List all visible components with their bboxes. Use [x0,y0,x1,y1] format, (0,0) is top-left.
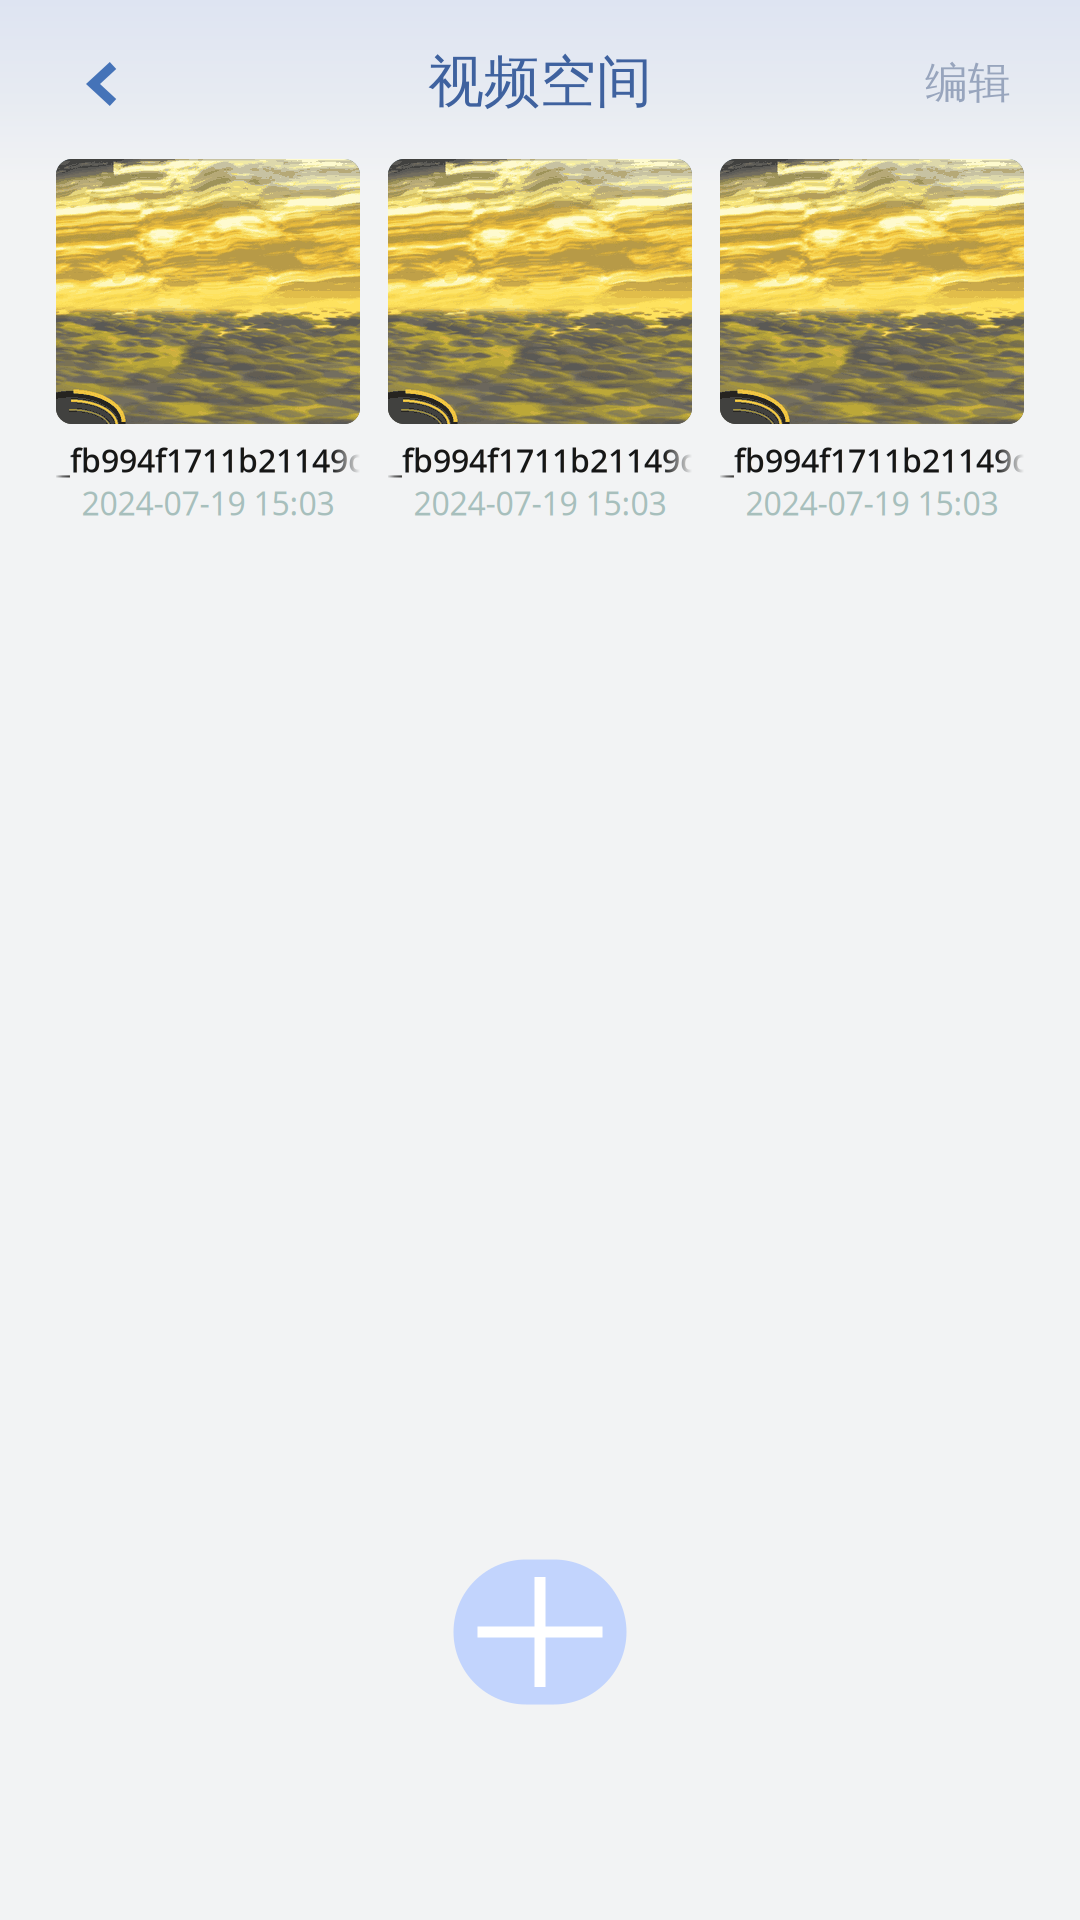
staticText: _fb994f1711b21149c [56,439,364,481]
staticText: 2024-07-19 15:03 [413,482,666,524]
staticText: _fb994f1711b21149c [388,439,696,481]
button[interactable]: Add video [410,1517,670,1747]
button[interactable]: _fb994f1711b21149c [388,159,692,525]
button[interactable]: 编辑 [888,29,1048,137]
image [388,159,692,424]
button[interactable]: Back [49,30,157,138]
button[interactable]: _fb994f1711b21149c [720,159,1024,525]
image [56,159,360,424]
staticText: 视频空间 [428,48,652,116]
image [720,159,1024,424]
button[interactable]: _fb994f1711b21149c [56,159,360,525]
staticText: 2024-07-19 15:03 [745,482,998,524]
staticText: _fb994f1711b21149c [720,439,1028,481]
staticText: 2024-07-19 15:03 [81,482,334,524]
staticText: 编辑 [925,57,1011,109]
